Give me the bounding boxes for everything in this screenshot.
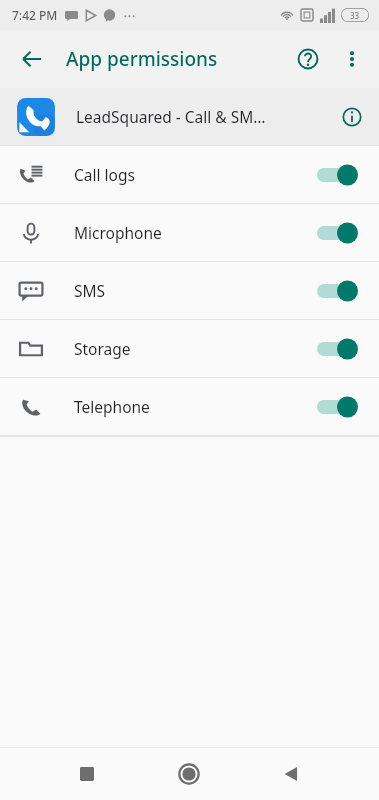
button[interactable]: More options	[331, 38, 373, 80]
staticText: Storage	[74, 338, 131, 359]
button[interactable]: Back	[269, 752, 313, 796]
button[interactable]: Storage	[0, 320, 379, 377]
staticText: Call logs	[74, 164, 135, 185]
button[interactable]: Telephone	[0, 378, 379, 435]
staticText: Telephone	[74, 396, 150, 417]
button[interactable]: Help	[285, 36, 331, 82]
staticText: App permissions	[66, 46, 218, 72]
staticText: Microphone	[74, 222, 162, 243]
button[interactable]: Toggle permission	[317, 276, 363, 306]
button[interactable]: Back	[8, 35, 56, 83]
button[interactable]: Toggle permission	[317, 218, 363, 248]
button[interactable]: Microphone	[0, 204, 379, 261]
button[interactable]: SMS	[0, 262, 379, 319]
button[interactable]: App info	[329, 94, 375, 140]
staticText: LeadSquared - Call & SM…	[76, 106, 266, 127]
staticText: SMS	[74, 280, 106, 301]
button[interactable]: Call logs	[0, 146, 379, 203]
button[interactable]: Recent apps	[65, 752, 109, 796]
button[interactable]: Toggle permission	[317, 334, 363, 364]
button[interactable]: LeadSquared - Call & SM…	[0, 88, 379, 145]
button[interactable]: Toggle permission	[317, 160, 363, 190]
staticText: 33	[350, 10, 360, 21]
button[interactable]: Toggle permission	[317, 392, 363, 422]
button[interactable]: Home	[166, 751, 212, 797]
staticText: 7:42 PM	[12, 7, 58, 23]
